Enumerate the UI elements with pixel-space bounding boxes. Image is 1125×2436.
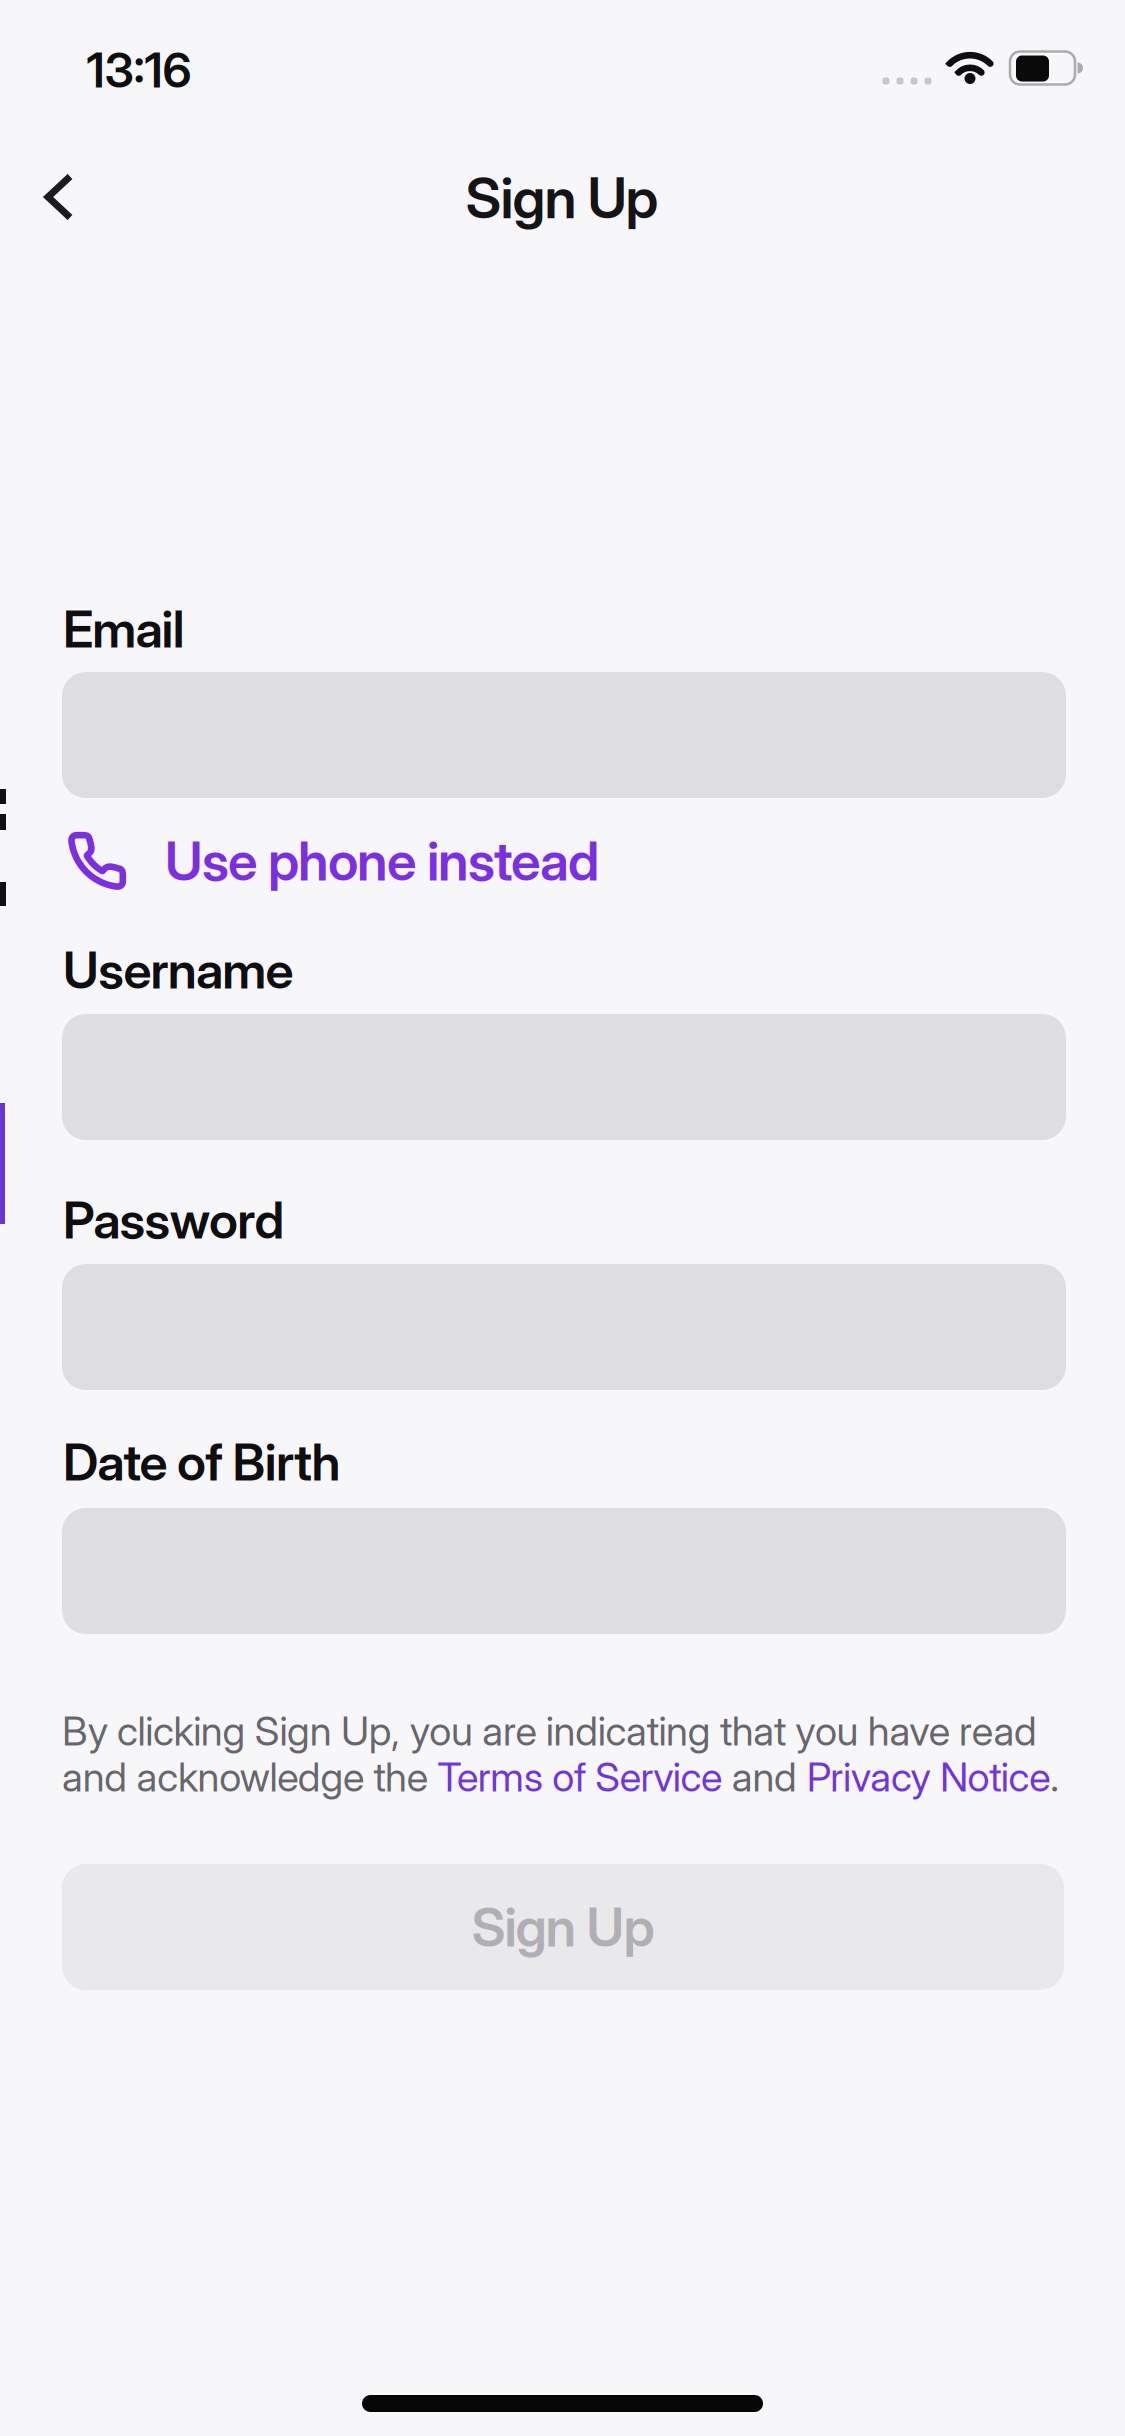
staticText: 13:16 [86, 41, 191, 99]
button[interactable]: Use phone instead [66, 823, 1067, 899]
staticText: . [1050, 1753, 1059, 1801]
staticText: Sign Up [471, 1895, 654, 1959]
button[interactable]: Back [38, 167, 82, 231]
staticText: Date of Birth [63, 1431, 340, 1493]
button[interactable]: Privacy Notice [807, 1753, 1050, 1801]
staticText: Password [63, 1189, 284, 1251]
staticText: Sign Up [465, 164, 658, 232]
button[interactable]: Sign Up [62, 1864, 1064, 1990]
staticText: Privacy Notice [807, 1753, 1050, 1801]
button[interactable]: Terms of Service [437, 1753, 722, 1801]
staticText: By clicking Sign Up, you are indicating … [62, 1707, 1037, 1755]
staticText: Terms of Service [437, 1753, 722, 1801]
staticText: and [722, 1753, 807, 1801]
staticText: and acknowledge the [62, 1753, 437, 1801]
staticText: Use phone instead [165, 829, 599, 893]
staticText: Username [63, 939, 293, 1001]
staticText: Email [63, 598, 185, 660]
